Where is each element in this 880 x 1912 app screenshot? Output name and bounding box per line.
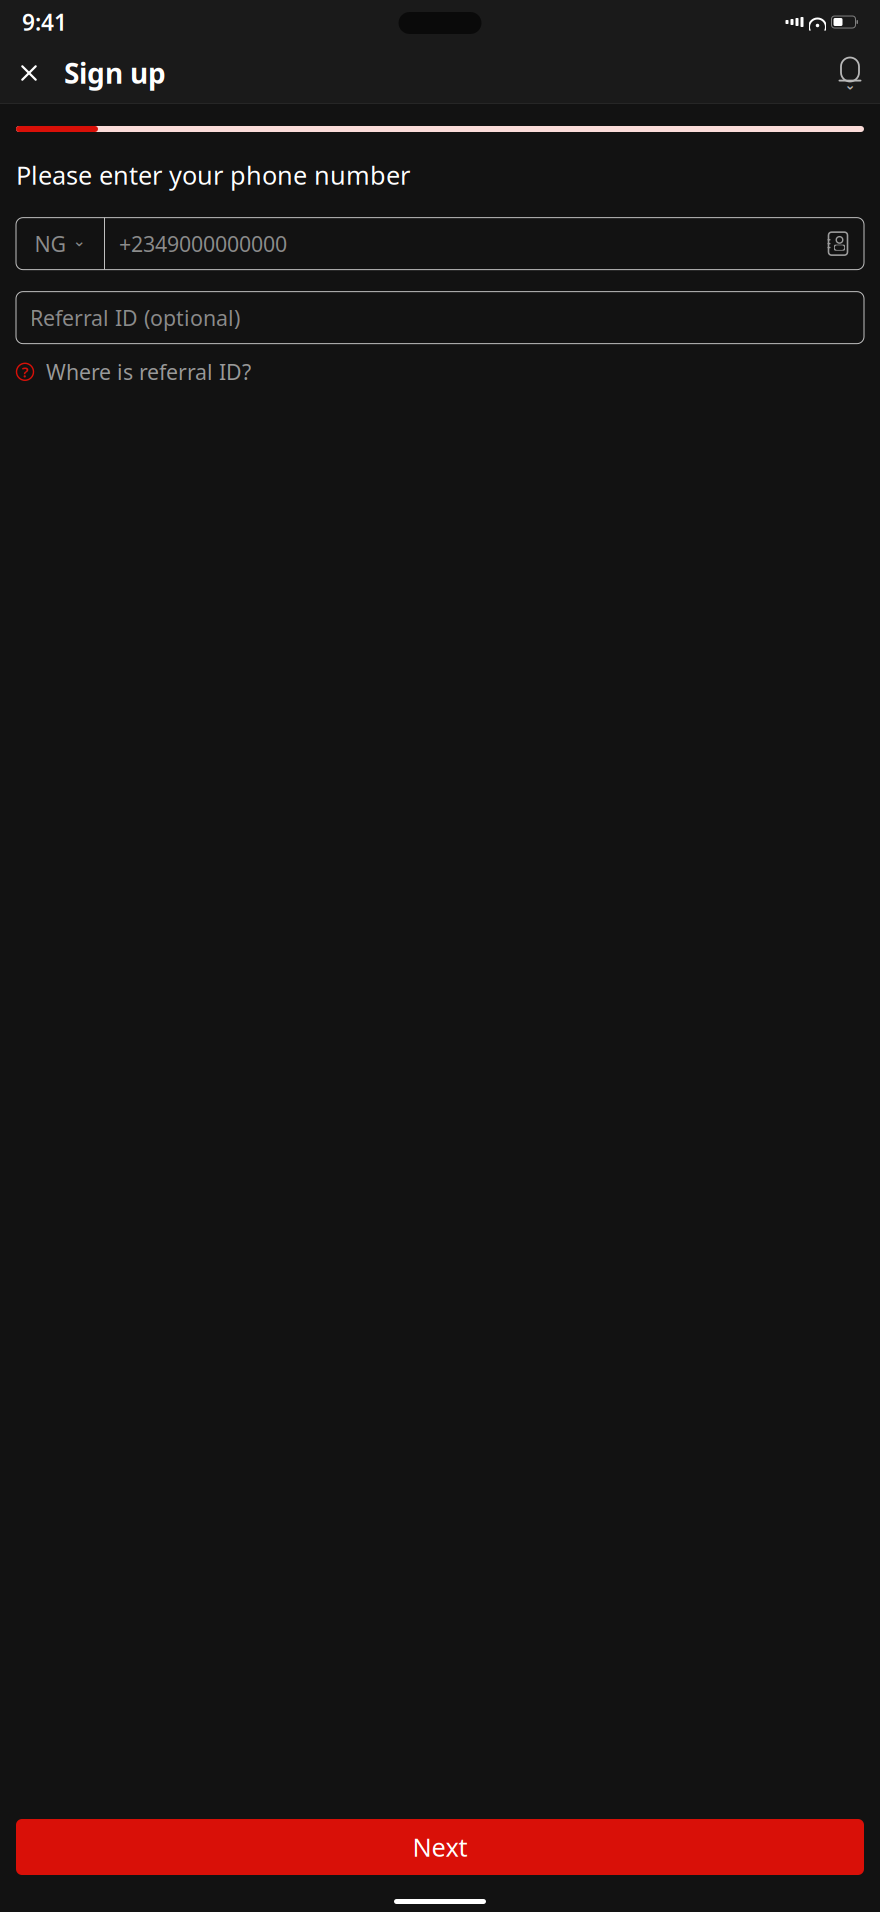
staticText: Please enter your phone number xyxy=(16,158,410,192)
staticText: Sign up xyxy=(64,54,166,92)
staticText: ⌄ xyxy=(72,232,85,250)
button[interactable]: Select country code xyxy=(16,218,104,270)
button[interactable]: Choose from contacts xyxy=(826,218,864,270)
staticText: Where is referral ID? xyxy=(46,358,251,386)
button[interactable]: Close xyxy=(0,50,42,96)
staticText: ⌄ xyxy=(844,77,855,92)
staticText: ? xyxy=(21,362,28,382)
staticText: Referral ID (optional) xyxy=(30,303,240,332)
button[interactable]: Referral ID (optional) xyxy=(16,292,864,344)
button[interactable]: ? xyxy=(0,344,880,392)
staticText: NG xyxy=(34,229,66,258)
staticText: 9:41 xyxy=(22,7,67,37)
staticText: Next xyxy=(412,1830,467,1864)
button[interactable]: Next xyxy=(16,1819,864,1875)
staticText: +2349000000000 xyxy=(119,229,287,258)
button[interactable]: Notifications xyxy=(836,50,880,95)
